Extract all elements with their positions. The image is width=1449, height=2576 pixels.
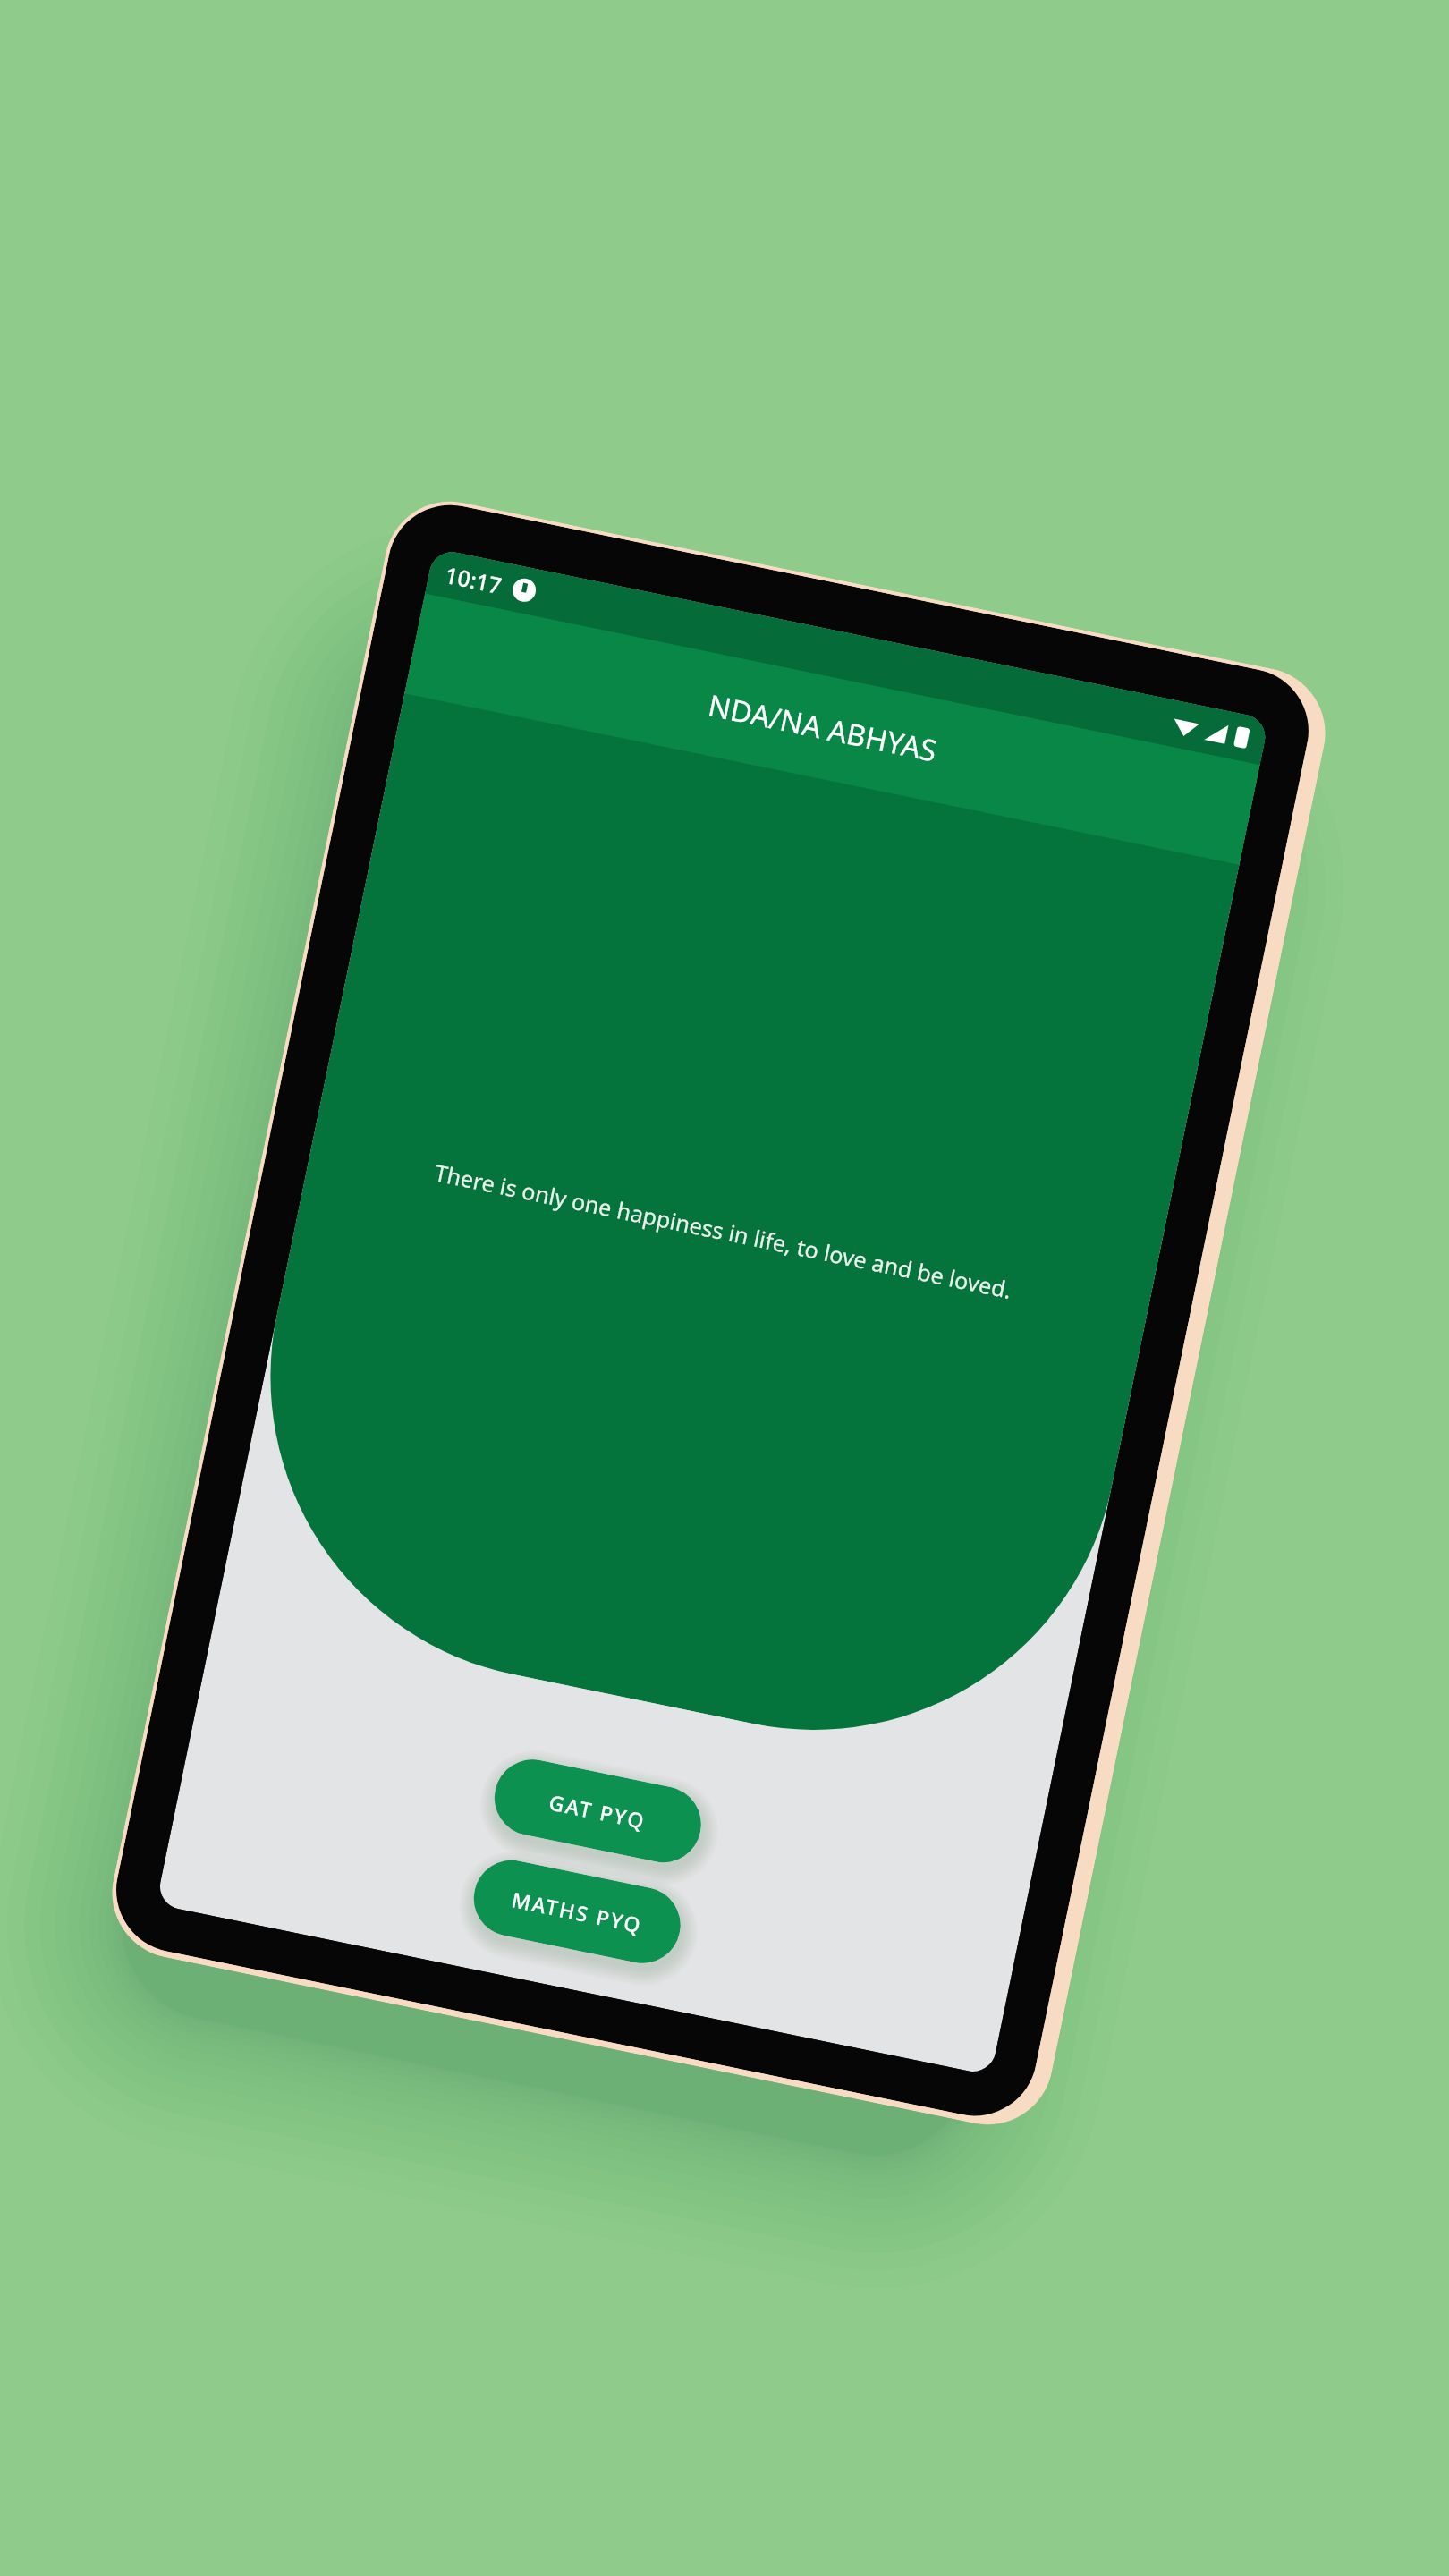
staticText: GAT PYQ <box>547 1787 649 1834</box>
staticText: 10:17 <box>442 559 505 601</box>
button[interactable]: GAT PYQ <box>488 1753 708 1869</box>
other: Battery <box>1232 725 1251 750</box>
button[interactable]: MATHS PYQ <box>467 1853 687 1970</box>
staticText: MATHS PYQ <box>509 1885 646 1939</box>
staticText: There is only one happiness in life, to … <box>308 1131 1138 1330</box>
other: Mobile signal <box>1203 719 1230 746</box>
staticText: NDA/NA ABHYAS <box>705 685 941 771</box>
other: Notification <box>510 576 538 604</box>
other: Wi-Fi <box>1170 712 1201 740</box>
